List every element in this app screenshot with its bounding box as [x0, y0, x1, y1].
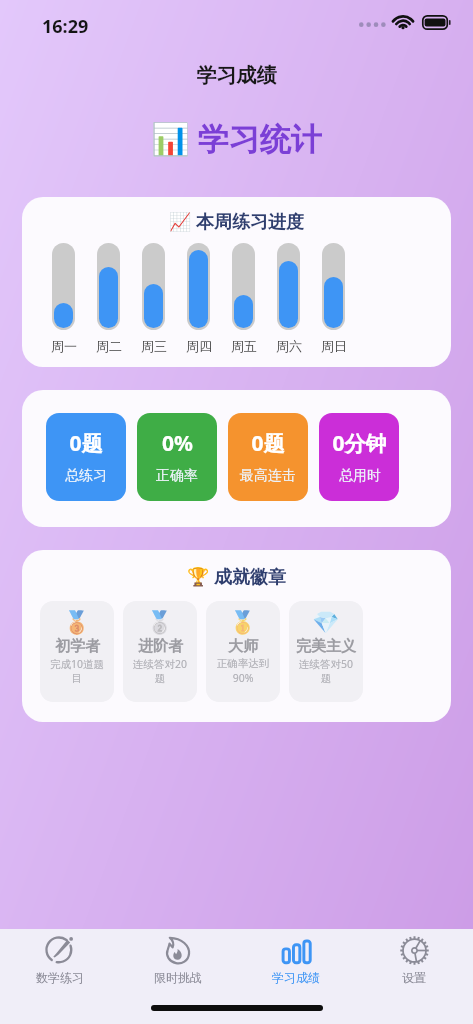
button[interactable]: 限时挑战 [119, 929, 237, 991]
button[interactable]: 0% [137, 413, 217, 501]
staticText: 总用时 [339, 467, 381, 485]
staticText: 📊 学习统计 [0, 117, 473, 159]
staticText: 大师 [228, 637, 258, 656]
staticText: 数学练习 [36, 970, 84, 985]
staticText: 初学者 [55, 637, 100, 656]
staticText: 完美主义 [296, 637, 356, 656]
staticText: 🥇 [229, 610, 257, 636]
button[interactable]: 设置 [355, 929, 473, 991]
staticText: 学习成绩 [0, 63, 473, 88]
staticText: 0分钟 [332, 429, 387, 458]
staticText: 🥈 [146, 610, 174, 636]
button[interactable]: 🥉 [40, 601, 114, 702]
staticText: 周五 [231, 338, 257, 354]
staticText: 连续答对50题 [294, 657, 358, 686]
staticText: 进阶者 [138, 637, 183, 656]
staticText: 周日 [321, 338, 347, 354]
staticText: 0题 [251, 429, 285, 458]
staticText: 💎 [312, 610, 340, 636]
staticText: 周一 [51, 338, 77, 354]
button[interactable]: 0题 [46, 413, 126, 501]
staticText: 周三 [141, 338, 167, 354]
staticText: 周四 [186, 338, 212, 354]
button[interactable]: 学习成绩 [237, 929, 355, 991]
button[interactable]: 🥇 [206, 601, 280, 702]
staticText: 设置 [402, 970, 426, 985]
button[interactable]: 🥈 [123, 601, 197, 702]
button[interactable]: 0题 [228, 413, 308, 501]
button[interactable]: 0分钟 [319, 413, 399, 501]
button[interactable]: 💎 [289, 601, 363, 702]
staticText: 📈 本周练习进度 [22, 209, 451, 234]
staticText: 正确率达到90% [211, 657, 275, 685]
staticText: 完成10道题目 [45, 657, 109, 686]
staticText: 连续答对20题 [128, 657, 192, 686]
staticText: 周六 [276, 338, 302, 354]
staticText: 学习成绩 [272, 970, 320, 985]
staticText: 16:29 [42, 14, 89, 39]
staticText: 🏆 成就徽章 [22, 564, 451, 589]
staticText: 正确率 [156, 467, 198, 485]
staticText: 0题 [69, 429, 103, 458]
staticText: 最高连击 [240, 467, 296, 485]
staticText: 0% [162, 429, 193, 458]
staticText: 总练习 [65, 467, 107, 485]
button[interactable]: 数学练习 [0, 929, 119, 991]
staticText: 🥉 [63, 610, 91, 636]
staticText: 周二 [96, 338, 122, 354]
staticText: 限时挑战 [154, 970, 202, 985]
